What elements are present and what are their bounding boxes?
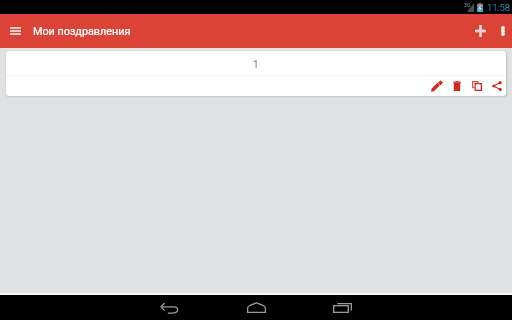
button[interactable]: Share: [486, 76, 506, 96]
button[interactable]: 1: [6, 51, 506, 96]
button[interactable]: Recent apps: [312, 295, 372, 320]
button[interactable]: Edit: [426, 76, 446, 96]
button[interactable]: Home: [226, 295, 286, 320]
button[interactable]: Add: [467, 16, 494, 46]
button[interactable]: Delete: [446, 76, 466, 96]
staticText: Мои поздравления: [33, 25, 131, 38]
button[interactable]: Copy: [466, 76, 486, 96]
button[interactable]: More options: [494, 16, 512, 46]
staticText: 11:58: [487, 2, 511, 13]
staticText: 3G: [464, 2, 471, 8]
button[interactable]: Open navigation drawer: [4, 20, 26, 42]
button[interactable]: Back: [140, 295, 200, 320]
staticText: 1: [253, 59, 259, 71]
